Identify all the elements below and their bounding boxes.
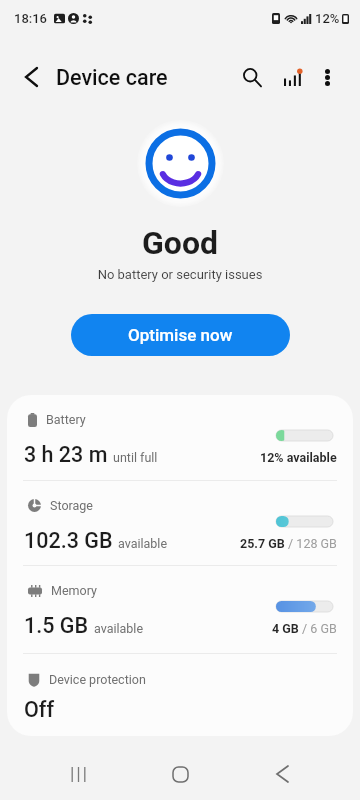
staticText: Off [24, 697, 55, 722]
staticText: / 128 GB [285, 536, 337, 551]
button[interactable]: More options [304, 54, 350, 100]
button[interactable]: Storage [7, 481, 353, 565]
staticText: Good [0, 224, 360, 262]
button[interactable]: Search [230, 55, 274, 99]
button[interactable]: Device protection [7, 654, 353, 736]
staticText: available [94, 621, 144, 636]
staticText: Storage [50, 498, 93, 513]
staticText: Optimise now [128, 325, 233, 345]
button[interactable]: Performance report [271, 56, 313, 98]
staticText: 3 h 23 m [24, 442, 108, 467]
staticText: 102.3 GB [24, 528, 113, 553]
button[interactable]: Back [258, 750, 306, 798]
staticText: Battery [46, 412, 86, 427]
staticText: 12% [315, 11, 340, 26]
button[interactable]: Memory [7, 566, 353, 653]
button[interactable]: Optimise now [71, 314, 290, 356]
staticText: Memory [51, 583, 97, 598]
button[interactable]: Home [156, 750, 204, 798]
button[interactable]: Navigate up [7, 53, 55, 101]
staticText: No battery or security issues [0, 267, 360, 282]
staticText: 18:16 [14, 11, 48, 26]
staticText: until full [113, 450, 158, 465]
button[interactable]: Battery [7, 395, 353, 480]
staticText: / 6 GB [299, 621, 337, 636]
button[interactable]: Recent apps [54, 750, 102, 798]
staticText: 12% available [260, 450, 337, 465]
staticText: Device protection [49, 672, 146, 687]
staticText: 1.5 GB [24, 613, 89, 638]
staticText: 4 GB [272, 621, 299, 636]
staticText: available [118, 536, 168, 551]
staticText: Device care [56, 65, 168, 90]
staticText: 25.7 GB [240, 536, 285, 551]
